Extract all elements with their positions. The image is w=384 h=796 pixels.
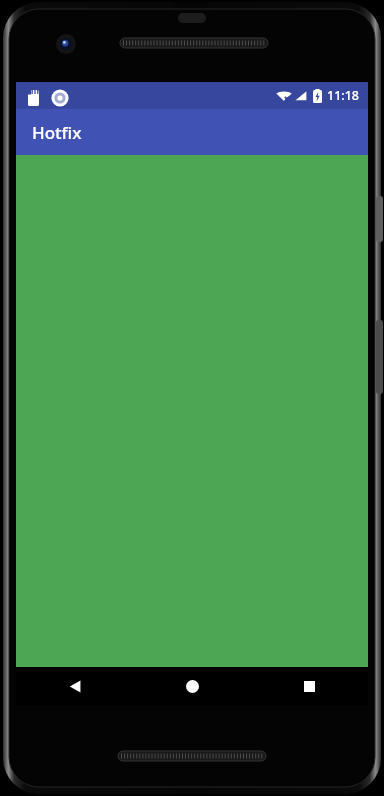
- button[interactable]: Recent apps: [251, 667, 368, 705]
- staticText: Hotfix: [32, 121, 82, 144]
- staticText: 11:18: [327, 87, 360, 104]
- button[interactable]: Home: [134, 667, 251, 705]
- button[interactable]: Back: [16, 667, 134, 705]
